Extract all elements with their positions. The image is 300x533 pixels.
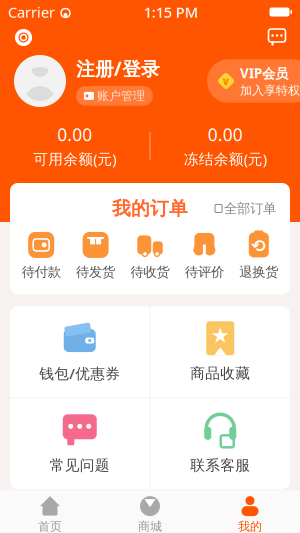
staticText: 冻结余额(元) (184, 149, 267, 168)
staticText: Carrier (8, 2, 55, 22)
staticText: 1:15 PM (144, 2, 198, 22)
staticText: 全部订单 (224, 200, 276, 217)
staticText: ⟲ (251, 236, 266, 256)
staticText: ★ (211, 323, 230, 347)
staticText: 我的订单 (112, 197, 188, 220)
button[interactable]: ★ (150, 306, 290, 397)
button[interactable]: 联系客服 (150, 398, 290, 489)
button[interactable]: 待付款 (14, 232, 68, 280)
staticText: 待收货 (130, 264, 169, 280)
staticText: 待付款 (22, 264, 61, 280)
button[interactable]: 我的 (200, 490, 300, 533)
staticText: 账户管理 (97, 88, 145, 103)
staticText: 注册/登录 (76, 56, 160, 81)
button[interactable]: 常见问题 (10, 398, 149, 489)
staticText: 加入享特权 (240, 83, 300, 98)
button[interactable]: 首页 (0, 490, 100, 533)
staticText: 首页 (38, 519, 62, 533)
staticText: ∨ (221, 74, 231, 88)
staticText: 我的 (238, 519, 262, 533)
staticText: 0.00 (57, 123, 92, 146)
button[interactable]: ∨ (207, 59, 300, 103)
staticText: 待评价 (185, 264, 224, 280)
staticText: 钱包/优惠券 (39, 364, 120, 383)
staticText: 常见问题 (50, 456, 110, 474)
button[interactable]: 待收货 (123, 232, 177, 280)
staticText: 商城 (138, 519, 162, 533)
button[interactable]: 钱包/优惠券 (10, 306, 149, 397)
staticText: 联系客服 (190, 456, 250, 474)
button[interactable]: 全部订单 (215, 200, 276, 217)
button[interactable]: 商城 (100, 490, 200, 533)
button[interactable]: Messages (268, 28, 286, 46)
button[interactable]: 账户管理 (76, 86, 153, 106)
button[interactable]: 待评价 (177, 232, 231, 280)
staticText: VIP会员 (240, 64, 288, 82)
staticText: 0.00 (208, 123, 243, 146)
button[interactable]: Settings (14, 28, 33, 47)
button[interactable]: ⟲ (232, 232, 286, 280)
staticText: 可用余额(元) (33, 149, 116, 168)
staticText: 待发货 (76, 264, 115, 280)
button[interactable]: 待发货 (69, 232, 123, 280)
staticText: 商品收藏 (190, 364, 250, 382)
staticText: 退换货 (239, 264, 278, 280)
